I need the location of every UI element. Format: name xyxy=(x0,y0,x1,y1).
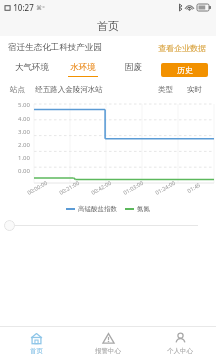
button[interactable]: 查看企业数据 xyxy=(156,41,208,55)
button[interactable]: 首页 xyxy=(0,327,72,360)
staticText: 1.00 xyxy=(18,154,30,162)
staticText: 3.00 xyxy=(18,128,30,136)
staticText: 首页 xyxy=(97,19,119,33)
staticText: 01:03:00 xyxy=(122,179,144,196)
staticText: 历史 xyxy=(177,65,193,75)
staticText: ⌘° xyxy=(36,4,45,12)
staticText: 4.00 xyxy=(18,115,30,123)
staticText: 00:00:00 xyxy=(26,179,48,196)
staticText: 01:24:00 xyxy=(154,179,176,196)
staticText: 00:42:00 xyxy=(90,179,112,196)
staticText: 报警中心 xyxy=(95,347,121,355)
button[interactable]: 固废 xyxy=(108,59,159,80)
button[interactable]: 大气环境 xyxy=(6,59,57,80)
staticText: 2.00 xyxy=(18,141,30,149)
staticText: 查看企业数据 xyxy=(158,43,206,53)
staticText: 0.00 xyxy=(18,167,30,175)
staticText: 固废 xyxy=(125,62,142,73)
staticText: 高锰酸盐指数 xyxy=(78,205,117,213)
staticText: 水环境 xyxy=(70,62,96,73)
staticText: 5.00 xyxy=(18,101,30,109)
staticText: 站点 xyxy=(10,85,25,94)
staticText: 个人中心 xyxy=(167,347,193,355)
button[interactable]: 水环境 xyxy=(57,59,108,80)
button[interactable]: 历史 xyxy=(161,63,208,77)
staticText: 00:21:00 xyxy=(58,179,80,196)
staticText: 宿迁生态化工科技产业园 xyxy=(8,42,102,53)
staticText: 大气环境 xyxy=(15,62,49,73)
button[interactable]: 报警中心 xyxy=(72,327,144,360)
button[interactable]: Time range slider xyxy=(0,215,216,235)
staticText: 01:45 xyxy=(185,181,202,194)
staticText: 实时 xyxy=(187,85,202,94)
staticText: 首页 xyxy=(30,347,43,355)
staticText: 氨氮 xyxy=(137,205,150,213)
staticText: 10:27 xyxy=(13,2,34,13)
staticText: 经五路入金陵河水站 xyxy=(35,85,103,94)
staticText: 类型 xyxy=(158,85,173,94)
button[interactable]: 个人中心 xyxy=(144,327,216,360)
